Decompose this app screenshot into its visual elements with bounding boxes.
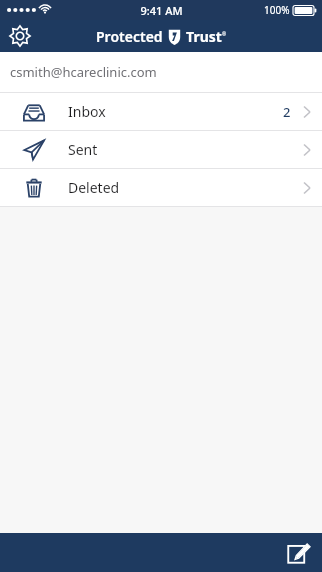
button[interactable]: Sent [0,131,322,168]
button[interactable]: Inbox [0,93,322,130]
button[interactable]: Settings [0,20,40,52]
button[interactable]: Compose [280,536,314,570]
staticText: 100% [264,3,290,17]
staticText: 9:41 AM [140,3,183,18]
staticText: ® [222,31,227,38]
staticText: Sent [68,140,98,159]
staticText: 2 [283,103,291,121]
staticText: Trust [186,27,222,46]
staticText: Deleted [68,178,120,197]
staticText: Protected [96,27,163,46]
button[interactable]: csmith@hcareclinic.com [0,52,322,92]
staticText: Inbox [68,102,106,121]
button[interactable]: Deleted [0,169,322,206]
staticText: csmith@hcareclinic.com [10,63,157,81]
